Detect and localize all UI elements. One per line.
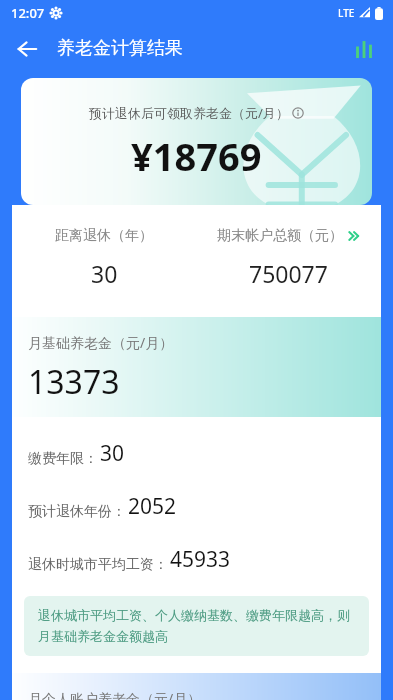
staticText: 13373 xyxy=(28,360,120,404)
staticText: LTE xyxy=(338,6,355,20)
staticText: 缴费年限： xyxy=(28,450,98,468)
staticText: 月基础养老金（元/月） xyxy=(28,333,174,352)
staticText: 养老金计算结果 xyxy=(57,37,183,60)
button[interactable]: 预计退休后可领取养老金（元/月） xyxy=(21,78,372,205)
staticText: 45933 xyxy=(170,545,231,574)
button[interactable]: Back xyxy=(6,28,48,70)
button[interactable]: 期末帐户总额（元） xyxy=(196,227,381,289)
staticText: 距离退休（年） xyxy=(55,227,153,245)
staticText: 12:07 xyxy=(11,4,45,22)
staticText: 预计退休年份： xyxy=(28,503,126,521)
staticText: 30 xyxy=(100,439,125,468)
staticText: 月个人账户养老金（元/月） xyxy=(28,689,202,700)
staticText: 期末帐户总额（元） xyxy=(217,227,343,245)
button[interactable]: Chart xyxy=(343,28,385,70)
staticText: 退休时城市平均工资： xyxy=(28,556,168,574)
staticText: 预计退休后可领取养老金（元/月） xyxy=(89,104,289,122)
staticText: ¥18769 xyxy=(131,130,262,182)
staticText: 退休城市平均工资、个人缴纳基数、缴费年限越高，则月基础养老金金额越高 xyxy=(38,607,355,645)
staticText: 750077 xyxy=(249,258,328,289)
staticText: 30 xyxy=(91,258,118,289)
button[interactable]: 距离退休（年） xyxy=(12,227,196,289)
staticText: 2052 xyxy=(128,492,177,521)
